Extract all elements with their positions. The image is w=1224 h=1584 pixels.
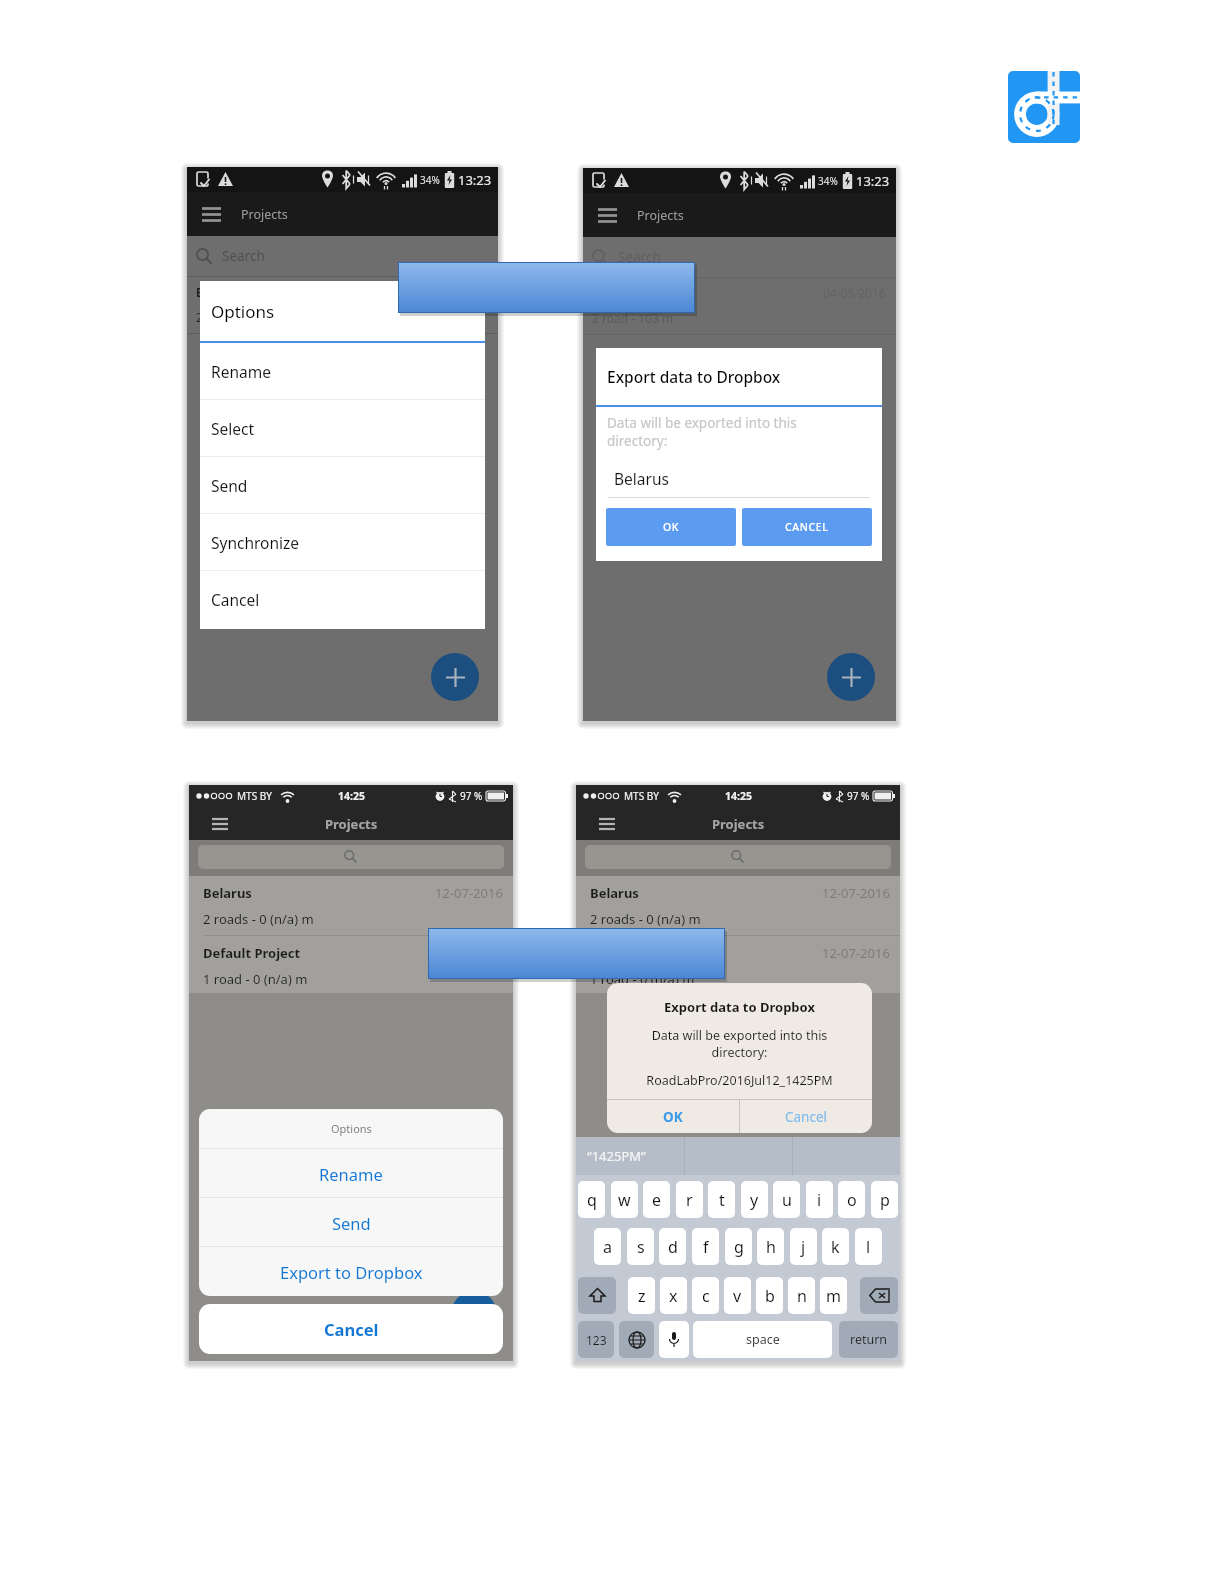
button[interactable]: Cancel (740, 1100, 872, 1133)
button[interactable]: Menu (583, 193, 631, 237)
button[interactable]: space (693, 1321, 832, 1358)
button[interactable]: Belarus (203, 884, 503, 935)
staticText: j (801, 1236, 806, 1258)
staticText: Data will be exported into this director… (607, 1027, 872, 1061)
button[interactable]: Menu (187, 192, 235, 236)
staticText: OK (663, 520, 680, 534)
staticText: Export data to Dropbox (607, 366, 781, 387)
button[interactable]: return (839, 1321, 898, 1358)
button[interactable]: Menu (586, 807, 628, 840)
button[interactable]: h (757, 1228, 784, 1265)
staticText: w (618, 1189, 631, 1211)
button[interactable]: o (838, 1181, 865, 1218)
button[interactable]: Switch keyboard (619, 1321, 654, 1358)
button[interactable]: g (725, 1228, 752, 1265)
button[interactable]: Cancel (200, 571, 485, 628)
staticText: Select (211, 418, 255, 439)
button[interactable]: c (692, 1277, 719, 1314)
staticText: space (746, 1331, 780, 1348)
staticText: 97 % (460, 789, 483, 803)
staticText: Belarus (592, 285, 823, 301)
button[interactable]: b (756, 1277, 783, 1314)
button[interactable]: v (724, 1277, 751, 1314)
staticText: Projects (241, 206, 288, 223)
button[interactable]: Belarus (590, 884, 890, 935)
button[interactable]: Synchronize (200, 514, 485, 571)
staticText: RoadLabPro/2016Jul12_1425PM (607, 1072, 872, 1089)
button[interactable]: m (820, 1277, 847, 1314)
button[interactable]: z (628, 1277, 655, 1314)
button[interactable]: a (594, 1228, 621, 1265)
button[interactable] (198, 845, 504, 869)
button[interactable]: Default Project (590, 944, 890, 993)
button[interactable]: q (578, 1181, 605, 1218)
button[interactable]: Default Project (203, 944, 503, 993)
button[interactable]: j (790, 1228, 817, 1265)
staticText: Rename (211, 361, 271, 382)
button[interactable]: CANCEL (742, 508, 872, 546)
staticText: Options (331, 1121, 372, 1136)
staticText: b (765, 1285, 775, 1307)
button[interactable]: Dictate (659, 1321, 689, 1358)
button[interactable]: r (676, 1181, 703, 1218)
button[interactable]: 123 (578, 1321, 614, 1358)
button[interactable]: l (855, 1228, 882, 1265)
button[interactable]: Backspace (860, 1277, 898, 1314)
button[interactable]: k (822, 1228, 849, 1265)
staticText: 13:23 (458, 171, 492, 189)
button[interactable]: “1425PM” (576, 1137, 684, 1175)
staticText: v (733, 1285, 742, 1307)
button[interactable]: u (773, 1181, 800, 1218)
staticText: CANCEL (785, 520, 829, 534)
staticText: return (850, 1331, 888, 1348)
button[interactable]: Cancel (199, 1304, 503, 1354)
button[interactable]: Add project (827, 653, 875, 701)
button[interactable]: Rename (199, 1149, 503, 1198)
staticText: Options (211, 300, 275, 323)
staticText: 123 (586, 1332, 607, 1348)
staticText: l (866, 1236, 871, 1258)
button[interactable]: Add project (431, 653, 479, 701)
staticText: 12-07-2016 (822, 884, 890, 902)
staticText: Default Project (203, 944, 503, 962)
button[interactable]: t (708, 1181, 735, 1218)
button[interactable]: Select (200, 400, 485, 457)
staticText: z (638, 1285, 646, 1307)
staticText: “1425PM” (587, 1147, 646, 1165)
button[interactable]: Menu (199, 807, 241, 840)
staticText: 04-05-2016 (425, 284, 488, 300)
button[interactable] (585, 845, 891, 869)
button[interactable]: e (643, 1181, 670, 1218)
button[interactable]: OK (606, 508, 736, 546)
staticText: d (668, 1236, 678, 1258)
button[interactable] (398, 262, 695, 313)
staticText: Belarus (614, 468, 669, 489)
staticText: Rename (319, 1163, 383, 1185)
button[interactable]: x (660, 1277, 687, 1314)
button[interactable]: Send (200, 457, 485, 514)
button[interactable]: y (741, 1181, 768, 1218)
staticText: 2 road - 103 m (592, 310, 674, 326)
button[interactable]: Send (199, 1198, 503, 1247)
button[interactable]: s (627, 1228, 654, 1265)
button[interactable]: n (788, 1277, 815, 1314)
button[interactable] (428, 928, 725, 979)
button[interactable]: Shift (578, 1277, 616, 1314)
button[interactable]: d (659, 1228, 686, 1265)
button[interactable]: f (692, 1228, 719, 1265)
button[interactable]: Rename (200, 343, 485, 400)
staticText: 14:25 (338, 789, 365, 803)
button[interactable]: i (806, 1181, 833, 1218)
staticText: 2 road - 103 m (196, 309, 278, 325)
button[interactable]: Export to Dropbox (199, 1247, 503, 1296)
button[interactable]: p (871, 1181, 898, 1218)
staticText: 13:23 (856, 172, 890, 190)
button[interactable]: w (611, 1181, 638, 1218)
staticText: 97 % (847, 789, 870, 803)
staticText: q (587, 1189, 597, 1211)
button[interactable]: Add project (451, 1291, 497, 1337)
staticText: x (669, 1285, 678, 1307)
button[interactable]: OK (607, 1100, 739, 1133)
